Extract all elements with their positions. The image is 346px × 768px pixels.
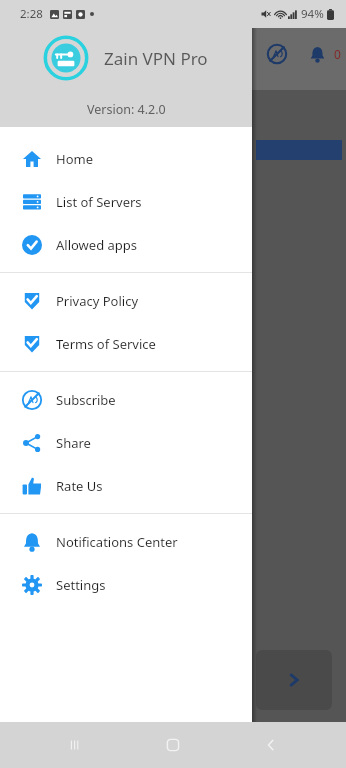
button[interactable]: Rate Us <box>0 464 252 507</box>
button[interactable]: Settings <box>0 563 252 606</box>
button[interactable]: Privacy Policy <box>0 279 252 322</box>
staticText: List of Servers <box>56 193 142 211</box>
staticText: Version: 4.2.0 <box>87 101 166 118</box>
button[interactable]: Home <box>150 722 196 768</box>
staticText: Subscribe <box>56 391 116 409</box>
button[interactable] <box>256 650 332 710</box>
button[interactable]: Subscribe <box>0 378 252 421</box>
staticText: Rate Us <box>56 477 103 495</box>
staticText: Zain VPN Pro <box>104 47 208 70</box>
button[interactable]: Allowed apps <box>0 223 252 266</box>
staticText: Share <box>56 434 91 452</box>
staticText: Home <box>56 150 93 168</box>
button[interactable]: Home <box>0 137 252 180</box>
staticText: 2:28 <box>20 6 43 22</box>
staticText: Terms of Service <box>56 335 156 353</box>
button[interactable]: Recent apps <box>52 722 98 768</box>
staticText: Allowed apps <box>56 236 138 254</box>
staticText: 94% <box>301 6 324 22</box>
staticText: Notifications Center <box>56 533 178 551</box>
button[interactable]: List of Servers <box>0 180 252 223</box>
button[interactable]: Notifications Center <box>0 520 252 563</box>
button[interactable]: Terms of Service <box>0 322 252 365</box>
staticText: Privacy Policy <box>56 292 139 310</box>
staticText: 0 <box>334 46 341 62</box>
button[interactable]: Share <box>0 421 252 464</box>
button[interactable]: Notifications <box>304 41 330 67</box>
button[interactable]: Remove ads <box>264 41 290 67</box>
staticText: Settings <box>56 576 106 594</box>
